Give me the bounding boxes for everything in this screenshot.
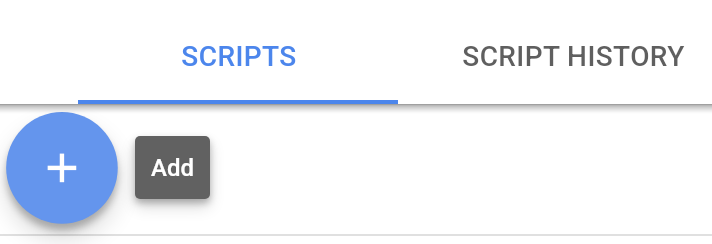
staticText: Add bbox=[151, 154, 194, 182]
button[interactable]: SCRIPT HISTORY bbox=[416, 8, 712, 104]
button[interactable]: Add bbox=[6, 112, 118, 224]
button[interactable]: SCRIPTS bbox=[79, 8, 399, 104]
staticText: SCRIPTS bbox=[181, 40, 297, 73]
staticText: SCRIPT HISTORY bbox=[462, 40, 685, 73]
